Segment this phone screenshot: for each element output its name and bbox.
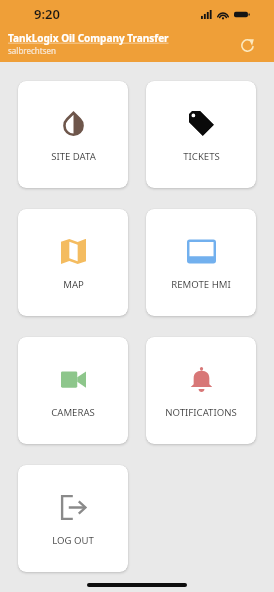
staticText: 9:20 bbox=[34, 5, 60, 23]
button[interactable]: Refresh bbox=[233, 31, 261, 59]
button[interactable]: CAMERAS bbox=[18, 337, 128, 444]
staticText: LOG OUT bbox=[52, 534, 94, 547]
staticText: salbrechtsen bbox=[8, 45, 56, 56]
staticText: MAP bbox=[63, 278, 84, 291]
button[interactable]: MAP bbox=[18, 209, 128, 316]
staticText: SITE DATA bbox=[51, 150, 96, 163]
staticText: NOTIFICATIONS bbox=[165, 406, 237, 419]
button[interactable]: SITE DATA bbox=[18, 81, 128, 188]
staticText: TICKETS bbox=[183, 150, 220, 163]
button[interactable]: REMOTE HMI bbox=[146, 209, 256, 316]
button[interactable]: NOTIFICATIONS bbox=[146, 337, 256, 444]
staticText: TankLogix Oil Company Transfer bbox=[8, 31, 169, 45]
button[interactable]: TICKETS bbox=[146, 81, 256, 188]
button[interactable]: LOG OUT bbox=[18, 465, 128, 572]
staticText: CAMERAS bbox=[51, 406, 95, 419]
staticText: REMOTE HMI bbox=[171, 278, 231, 291]
